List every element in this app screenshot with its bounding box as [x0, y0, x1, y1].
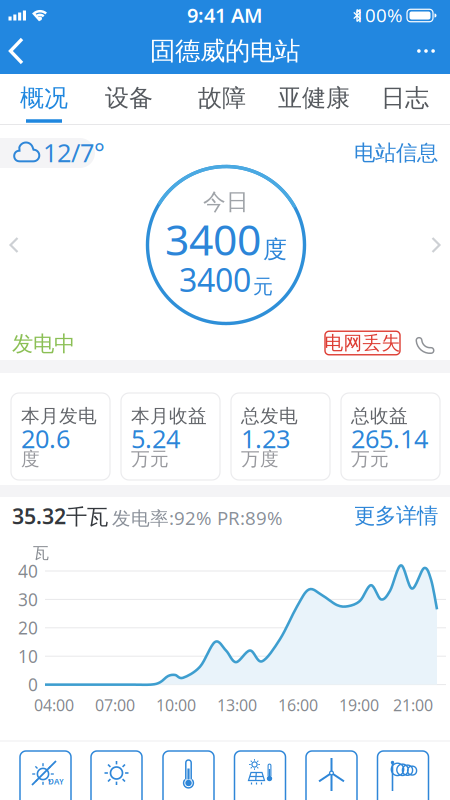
button[interactable]: 概况: [4, 75, 84, 121]
staticText: 10:00: [156, 694, 196, 716]
staticText: 度: [263, 235, 287, 264]
staticText: 40: [18, 559, 38, 582]
staticText: 07:00: [95, 694, 135, 716]
button[interactable]: 故障: [182, 75, 262, 121]
button[interactable]: More: [406, 31, 446, 71]
staticText: 9:41 AM: [187, 2, 263, 28]
staticText: 万度: [241, 447, 279, 470]
staticText: 更多详情: [354, 503, 438, 529]
staticText: DAY: [48, 776, 64, 787]
staticText: 16:00: [278, 694, 318, 716]
button[interactable]: Previous: [4, 235, 24, 255]
staticText: 总收益: [351, 404, 408, 427]
button[interactable]: Next: [426, 235, 446, 255]
staticText: 12/7°: [43, 136, 105, 169]
staticText: 3400: [179, 258, 251, 301]
staticText: 19:00: [339, 694, 379, 716]
button[interactable]: Back: [0, 29, 35, 73]
staticText: 21:00: [393, 694, 433, 716]
button[interactable]: Daily irradiation: [20, 751, 71, 800]
button[interactable]: 更多详情: [348, 501, 438, 531]
staticText: 电网丢失: [324, 331, 400, 354]
staticText: 100%: [354, 3, 403, 27]
staticText: 电站信息: [354, 140, 438, 166]
staticText: 万元: [351, 447, 389, 470]
staticText: 1.23: [241, 422, 290, 455]
staticText: 20: [18, 616, 38, 639]
staticText: 04:00: [34, 694, 74, 716]
staticText: 日志: [381, 83, 429, 113]
staticText: 本月发电: [21, 404, 97, 427]
staticText: 0: [28, 673, 38, 696]
staticText: 亚健康: [278, 83, 350, 113]
staticText: 13:00: [217, 694, 257, 716]
staticText: 20.6: [21, 422, 70, 455]
staticText: 瓦: [33, 543, 49, 563]
staticText: 3400: [165, 211, 261, 267]
staticText: 万元: [131, 447, 169, 470]
staticText: 35.32千瓦: [12, 502, 108, 530]
staticText: 发电中: [12, 331, 75, 357]
staticText: 今日: [203, 188, 249, 216]
staticText: 故障: [198, 83, 246, 113]
button[interactable]: 设备: [89, 75, 169, 121]
staticText: 30: [18, 588, 38, 611]
button[interactable]: Panel temperature: [234, 751, 285, 800]
staticText: 概况: [20, 83, 68, 113]
staticText: 度: [21, 447, 40, 470]
staticText: 265.14: [351, 422, 428, 455]
staticText: 固德威的电站: [150, 35, 300, 66]
staticText: 本月收益: [131, 404, 207, 427]
button[interactable]: Wind turbine: [306, 751, 357, 800]
staticText: 发电率:92% PR:89%: [112, 505, 283, 530]
button[interactable]: Ambient temperature: [163, 751, 214, 800]
button[interactable]: Irradiation: [91, 751, 142, 800]
staticText: 总发电: [241, 404, 298, 427]
staticText: 设备: [105, 83, 153, 113]
button[interactable]: Call: [414, 331, 438, 355]
staticText: 元: [253, 274, 273, 299]
button[interactable]: 日志: [365, 75, 445, 121]
staticText: 5.24: [131, 422, 180, 455]
button[interactable]: 电站信息: [348, 138, 438, 168]
button[interactable]: Wind direction: [377, 751, 428, 800]
button[interactable]: 亚健康: [274, 75, 354, 121]
staticText: 10: [18, 645, 38, 668]
